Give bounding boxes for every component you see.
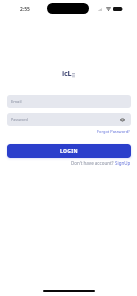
staticText: Don't have account? — [71, 160, 115, 166]
button[interactable]: LOGIN — [7, 144, 131, 158]
staticText: Password — [11, 117, 28, 122]
staticText: LOGIN — [60, 148, 79, 155]
button[interactable]: Forgot Password? — [97, 129, 130, 134]
button[interactable]: Don't have account? — [71, 160, 131, 166]
staticText: SignUp — [115, 160, 131, 166]
staticText: icL — [62, 68, 72, 78]
button[interactable]: Show password — [117, 114, 128, 125]
button[interactable]: Password — [7, 113, 131, 126]
staticText: 2:55 — [20, 6, 30, 13]
staticText: Email — [11, 99, 22, 105]
button[interactable]: Email — [7, 95, 131, 108]
